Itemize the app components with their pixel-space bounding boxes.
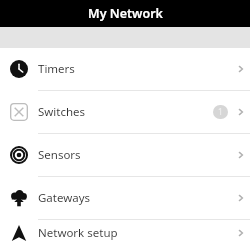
button[interactable]: Network setup [0, 220, 250, 245]
other: Timers [10, 60, 28, 78]
button[interactable]: Gateways [0, 177, 250, 220]
button[interactable]: Timers [0, 48, 250, 91]
staticText: Network setup [38, 225, 232, 241]
staticText: Switches [38, 104, 213, 120]
staticText: My Network [88, 5, 163, 22]
staticText: Sensors [38, 147, 232, 163]
staticText: 1 [218, 106, 223, 118]
other: Switches [10, 103, 28, 121]
other: Network setup [10, 224, 28, 242]
staticText: Timers [38, 61, 232, 77]
button[interactable]: Switches [0, 91, 250, 134]
other: Sensors [10, 146, 28, 164]
staticText: Gateways [38, 190, 232, 206]
button[interactable]: Sensors [0, 134, 250, 177]
other: Gateways [10, 189, 28, 207]
